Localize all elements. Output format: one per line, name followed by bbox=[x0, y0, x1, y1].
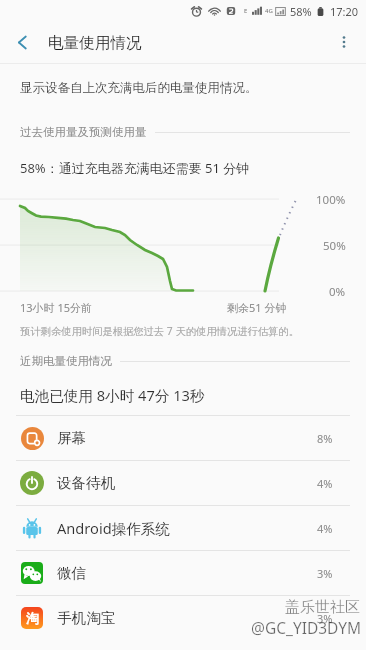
staticText: 4% bbox=[317, 521, 333, 536]
staticText: 4G bbox=[265, 7, 273, 15]
button[interactable]: Back bbox=[6, 26, 38, 58]
button[interactable]: 淘 bbox=[0, 596, 366, 640]
staticText: 8% bbox=[317, 431, 333, 446]
staticText: 电池已使用 8小时 47分 13秒 bbox=[20, 385, 205, 405]
staticText: Android操作系统 bbox=[57, 518, 170, 538]
staticText: 手机淘宝 bbox=[57, 609, 116, 627]
staticText: 屏幕 bbox=[57, 429, 87, 447]
staticText: 50% bbox=[323, 238, 346, 254]
button[interactable]: More options bbox=[328, 26, 360, 58]
staticText: 0% bbox=[329, 284, 346, 300]
staticText: 100% bbox=[316, 192, 346, 208]
button[interactable]: 微信 bbox=[0, 551, 366, 595]
staticText: 剩余51 分钟 bbox=[227, 300, 287, 315]
staticText: 微信 bbox=[57, 564, 87, 582]
staticText: E bbox=[244, 7, 248, 15]
staticText: 58% bbox=[290, 4, 312, 19]
staticText: 58%：通过充电器充满电还需要 51 分钟 bbox=[20, 159, 250, 177]
staticText: 显示设备自上次充满电后的电量使用情况。 bbox=[20, 80, 258, 96]
staticText: 预计剩余使用时间是根据您过去 7 天的使用情况进行估算的。 bbox=[20, 324, 299, 338]
staticText: 3% bbox=[317, 566, 333, 581]
staticText: 淘 bbox=[26, 610, 39, 626]
staticText: 近期电量使用情况 bbox=[20, 354, 112, 368]
staticText: 4% bbox=[317, 476, 333, 491]
button[interactable]: 屏幕 bbox=[0, 416, 366, 460]
staticText: 盖乐世社区 bbox=[285, 598, 360, 617]
staticText: 13小时 15分前 bbox=[20, 300, 93, 315]
staticText: @GC_YID3DYM bbox=[251, 617, 362, 638]
button[interactable]: Android操作系统 bbox=[0, 506, 366, 550]
staticText: 3% bbox=[317, 611, 333, 626]
staticText: 电量使用情况 bbox=[48, 33, 142, 53]
staticText: 过去使用量及预测使用量 bbox=[20, 125, 147, 139]
staticText: 设备待机 bbox=[57, 474, 116, 492]
staticText: 17:20 bbox=[330, 4, 359, 19]
button[interactable]: 设备待机 bbox=[0, 461, 366, 505]
